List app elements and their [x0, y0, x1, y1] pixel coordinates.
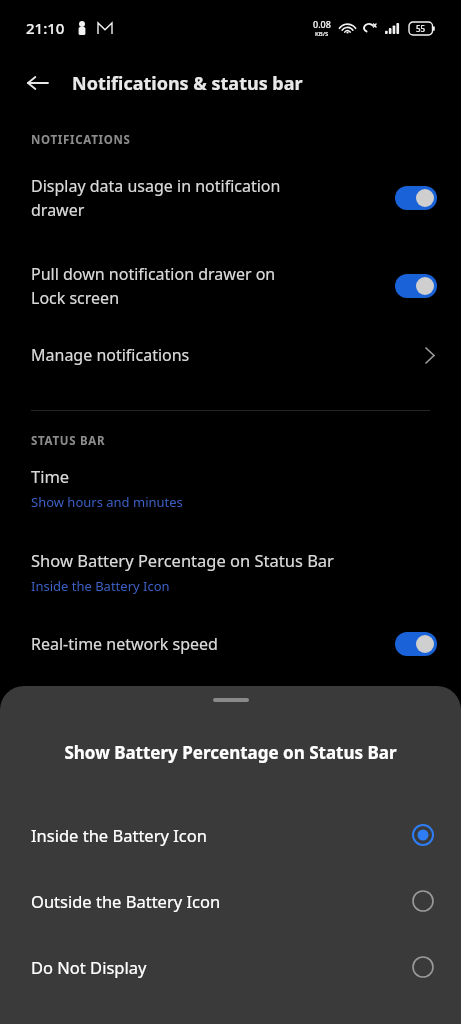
staticText: STATUS BAR — [31, 433, 106, 449]
button[interactable]: Display data usage in notification drawe… — [0, 148, 461, 234]
staticText: KB/S — [315, 30, 329, 38]
staticText: Inside the Battery Icon — [31, 577, 170, 595]
staticText: Show Battery Percentage on Status Bar — [64, 741, 397, 764]
staticText: Pull down notification drawer on Lock sc… — [31, 263, 383, 309]
button[interactable]: Do Not Display — [0, 934, 461, 1000]
staticText: Real-time network speed — [31, 633, 383, 655]
button[interactable]: Time — [0, 449, 461, 511]
button[interactable]: Inside the Battery Icon — [0, 802, 461, 868]
staticText: Outside the Battery Icon — [31, 890, 412, 912]
button[interactable]: Real-time network speed — [0, 619, 461, 669]
staticText: 0.08 — [313, 18, 331, 30]
staticText: Time — [31, 465, 70, 487]
staticText: Do Not Display — [31, 956, 412, 978]
staticText: 21:10 — [26, 18, 65, 38]
button[interactable]: Show Battery Percentage on Status Bar — [0, 533, 461, 595]
button[interactable]: Outside the Battery Icon — [0, 868, 461, 934]
staticText: 55 — [416, 23, 426, 34]
staticText: Notifications & status bar — [72, 71, 303, 96]
staticText: Manage notifications — [31, 344, 425, 366]
staticText: Show hours and minutes — [31, 493, 183, 511]
button[interactable]: Manage notifications — [0, 322, 461, 388]
staticText: NOTIFICATIONS — [31, 132, 131, 148]
button[interactable]: Pull down notification drawer on Lock sc… — [0, 234, 461, 322]
staticText: Show Battery Percentage on Status Bar — [31, 549, 334, 571]
staticText: Display data usage in notification drawe… — [31, 175, 383, 221]
staticText: Inside the Battery Icon — [31, 824, 412, 846]
button[interactable]: Back — [16, 61, 60, 105]
